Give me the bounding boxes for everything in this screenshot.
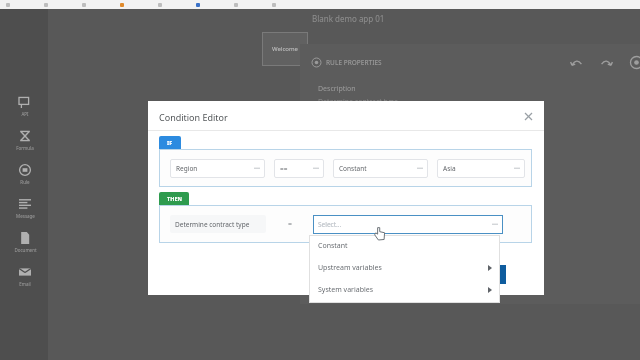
staticText: System variables [318,285,374,295]
staticText: == [280,164,288,173]
staticText: Determine contract type [318,97,399,107]
button[interactable]: Welcome [262,32,308,66]
staticText: Welcome [272,45,298,53]
staticText: Condition Editor [159,111,228,123]
button[interactable]: Undo [566,52,586,72]
staticText: Upstream variables [318,263,382,273]
staticText: RULE PROPERTIES [326,58,382,67]
button[interactable]: Region [170,159,265,178]
staticText: Select... [318,220,342,229]
button[interactable]: Email [10,266,40,287]
button[interactable]: Redo [596,52,616,72]
staticText: Asia [443,164,456,173]
button[interactable]: Constant [309,235,500,257]
staticText: Document [14,247,37,253]
staticText: = [288,219,293,229]
staticText: Blank demo app 01 [312,13,385,24]
staticText: Formula [16,145,34,151]
staticText: Rule [20,179,30,185]
button[interactable]: Select... [313,215,503,234]
button[interactable]: Message [10,198,40,219]
button[interactable]: API [10,96,40,117]
button[interactable]: System variables [309,279,500,301]
staticText: Constant [318,241,348,251]
button[interactable]: Upstream variables [309,257,500,279]
button[interactable]: Constant [333,159,428,178]
staticText: THEN [167,195,182,202]
staticText: Region [176,164,198,173]
button[interactable]: THEN [159,192,189,205]
staticText: Determine contract type [175,220,250,229]
button[interactable]: Asia [437,159,525,178]
staticText: Description [318,84,356,94]
staticText: API [21,111,29,117]
staticText: Message [16,213,35,219]
button[interactable]: IF [159,136,181,149]
button[interactable]: Determine contract type [170,215,266,233]
staticText: Constant [339,164,367,173]
button[interactable]: Rule [10,164,40,185]
staticText: Email [19,281,31,287]
button[interactable]: Document [10,232,40,253]
button[interactable]: Help [626,52,640,72]
button[interactable]: Close [520,108,536,124]
button[interactable]: == [274,159,324,178]
button[interactable]: Submit [444,265,506,284]
button[interactable]: Formula [10,130,40,151]
staticText: IF [167,139,173,146]
